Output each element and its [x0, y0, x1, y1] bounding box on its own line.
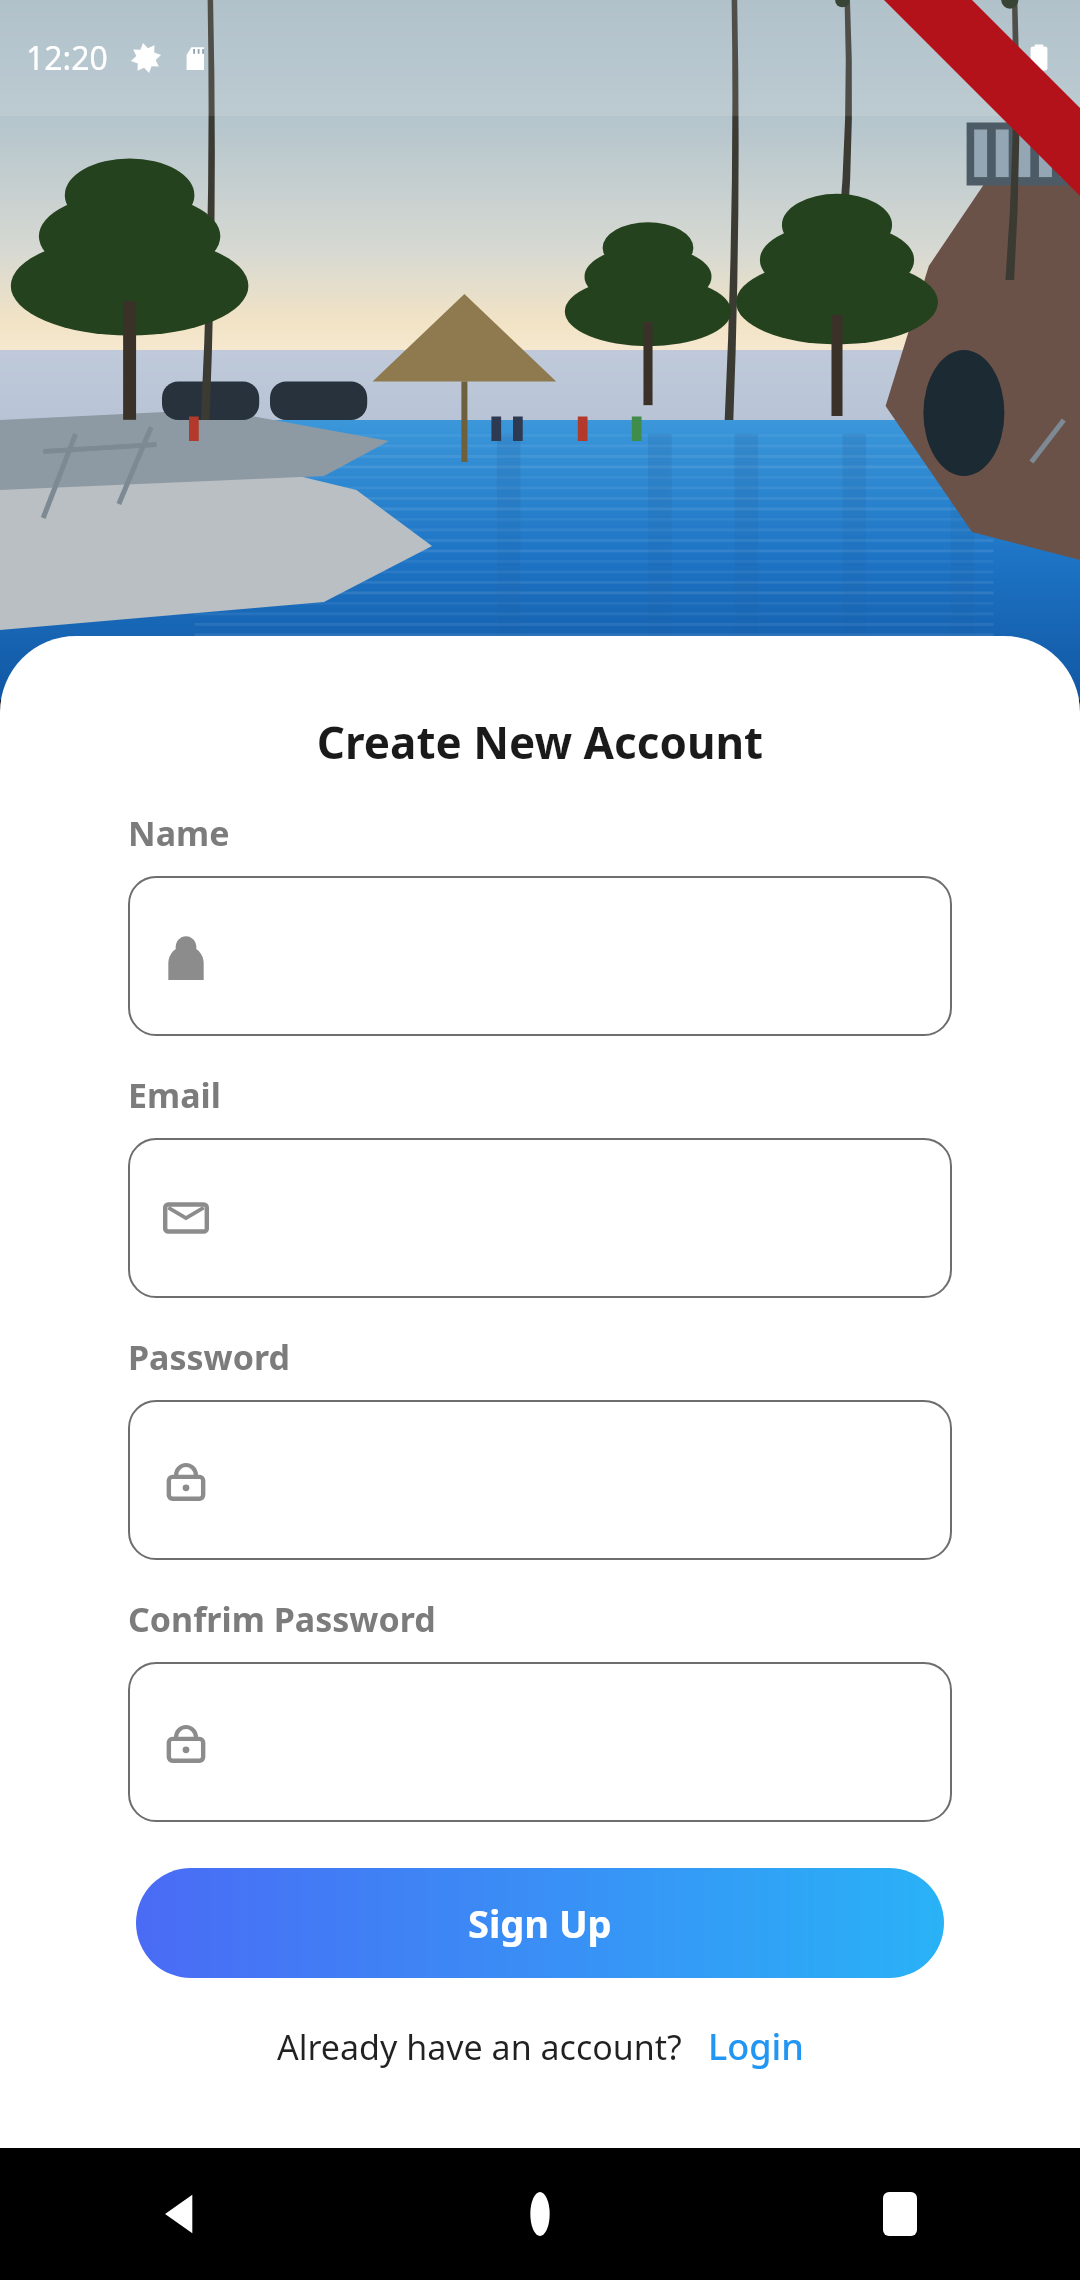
- button[interactable]: Home: [360, 2148, 720, 2280]
- staticText: Confrim Password: [128, 1596, 436, 1642]
- staticText: Already have an account?: [277, 2024, 682, 2070]
- button[interactable]: Sign Up: [136, 1868, 944, 1978]
- button[interactable]: [128, 1662, 952, 1822]
- staticText: Create New Account: [0, 712, 1080, 772]
- staticText: Name: [128, 810, 230, 856]
- button[interactable]: Recent apps: [720, 2148, 1080, 2280]
- staticText: Login: [708, 2022, 804, 2071]
- button[interactable]: [128, 876, 952, 1036]
- staticText: 12:20: [26, 36, 108, 80]
- button[interactable]: Login: [708, 2022, 804, 2071]
- button[interactable]: [128, 1138, 952, 1298]
- button[interactable]: Back: [0, 2148, 360, 2280]
- button[interactable]: [128, 1400, 952, 1560]
- staticText: Password: [128, 1334, 290, 1380]
- staticText: Sign Up: [468, 1897, 612, 1949]
- staticText: Email: [128, 1072, 221, 1118]
